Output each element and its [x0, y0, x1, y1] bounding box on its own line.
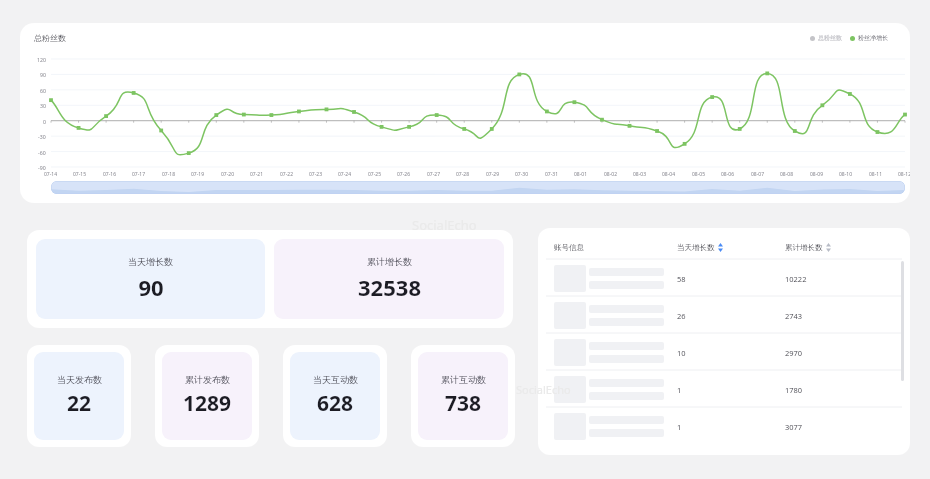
staticText: 628	[317, 389, 354, 418]
button[interactable]: 1	[546, 408, 902, 445]
staticText: 08-12	[898, 171, 910, 178]
staticText: 3077	[785, 422, 803, 432]
staticText: 07-26	[397, 171, 411, 178]
staticText: 1	[677, 385, 682, 395]
button[interactable]: Time range slider	[51, 181, 905, 194]
staticText: SocialEcho	[412, 216, 477, 234]
staticText: -30	[38, 133, 46, 140]
staticText: 07-30	[515, 171, 529, 178]
staticText: 账号信息	[554, 243, 584, 252]
staticText: 90	[40, 71, 46, 78]
button[interactable]: 累计发布数	[155, 345, 259, 447]
staticText: 07-15	[73, 171, 87, 178]
staticText: 32538	[358, 272, 421, 302]
staticText: 08-08	[780, 171, 794, 178]
staticText: 08-09	[810, 171, 824, 178]
staticText: 1780	[785, 385, 803, 395]
staticText: -90	[38, 164, 46, 171]
staticText: 08-10	[839, 171, 853, 178]
button[interactable]: 58	[546, 260, 902, 297]
staticText: 当天增长数	[128, 256, 173, 267]
staticText: 07-23	[309, 171, 323, 178]
staticText: 07-28	[456, 171, 470, 178]
staticText: 07-14	[44, 171, 58, 178]
staticText: 0	[43, 118, 46, 125]
staticText: SocialEcho	[516, 382, 571, 397]
staticText: 08-07	[751, 171, 765, 178]
staticText: 58	[677, 274, 686, 284]
staticText: 07-25	[368, 171, 382, 178]
staticText: 累计发布数	[185, 374, 230, 385]
staticText: 07-16	[103, 171, 117, 178]
staticText: 2743	[785, 311, 803, 321]
staticText: 07-19	[191, 171, 205, 178]
staticText: 08-06	[721, 171, 735, 178]
staticText: 10222	[785, 274, 807, 284]
staticText: 当天互动数	[313, 374, 358, 385]
staticText: 60	[40, 87, 46, 94]
staticText: 26	[677, 311, 686, 321]
staticText: 07-22	[280, 171, 294, 178]
staticText: 总粉丝数	[818, 34, 842, 42]
button[interactable]: 1	[546, 371, 902, 408]
staticText: 07-31	[545, 171, 559, 178]
staticText: 738	[445, 389, 482, 418]
staticText: 07-29	[486, 171, 500, 178]
staticText: 08-11	[869, 171, 883, 178]
button[interactable]: 26	[546, 297, 902, 334]
staticText: 08-01	[574, 171, 588, 178]
staticText: 累计增长数	[367, 256, 412, 267]
staticText: 1289	[183, 389, 232, 418]
button[interactable]: 当天增长数	[36, 239, 265, 319]
staticText: 07-20	[221, 171, 235, 178]
button[interactable]: 累计互动数	[411, 345, 515, 447]
staticText: 1	[677, 422, 682, 432]
button[interactable]: 当天增长数	[677, 243, 723, 252]
staticText: 10	[677, 348, 686, 358]
staticText: 08-05	[692, 171, 706, 178]
button[interactable]: 累计增长数	[274, 239, 504, 319]
staticText: 07-17	[132, 171, 146, 178]
button[interactable]: 10	[546, 334, 902, 371]
staticText: -60	[38, 149, 46, 156]
staticText: 累计增长数	[785, 243, 823, 252]
button[interactable]: 累计增长数	[785, 243, 831, 252]
staticText: 22	[67, 389, 92, 418]
button[interactable]: 当天发布数	[27, 345, 131, 447]
staticText: 90	[138, 272, 164, 302]
staticText: 累计互动数	[441, 374, 486, 385]
button[interactable]: 当天互动数	[283, 345, 387, 447]
staticText: 07-27	[427, 171, 441, 178]
staticText: 当天增长数	[677, 243, 715, 252]
staticText: 08-02	[604, 171, 618, 178]
staticText: 当天发布数	[57, 374, 102, 385]
staticText: 总粉丝数	[34, 33, 66, 43]
staticText: 120	[37, 56, 46, 63]
staticText: 08-03	[633, 171, 647, 178]
staticText: 07-21	[250, 171, 264, 178]
button[interactable]: 总粉丝数	[810, 34, 888, 42]
staticText: 07-18	[162, 171, 176, 178]
staticText: 粉丝净增长	[858, 34, 888, 42]
staticText: 30	[40, 102, 46, 109]
staticText: 08-04	[662, 171, 676, 178]
staticText: 07-24	[338, 171, 352, 178]
staticText: 2970	[785, 348, 803, 358]
